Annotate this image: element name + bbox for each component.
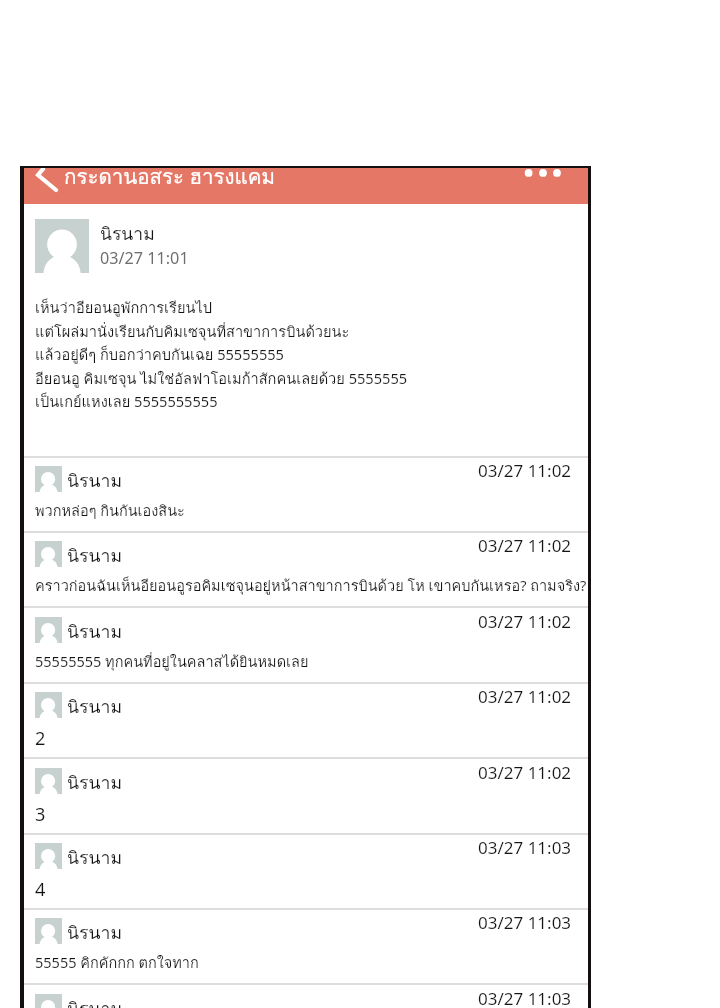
staticText: 2 [35,726,46,751]
staticText: 03/27 11:01 [100,247,189,269]
staticText: นิรนาม [100,220,155,248]
staticText: แต่โผล่มานั่งเรียนกับคิมเซจุนที่สาขาการบ… [35,320,350,343]
button[interactable]: Back [32,168,64,200]
staticText: นิรนาม [67,618,122,646]
staticText: นิรนาม [67,995,122,1008]
staticText: 03/27 11:02 [478,459,572,482]
staticText: นิรนาม [67,693,122,721]
staticText: 55555 คิกคักกก ตกใจทาก [35,951,199,974]
button[interactable]: นิรนาม [24,760,588,835]
staticText: 4 [35,877,46,902]
staticText: 03/27 11:03 [478,987,572,1008]
staticText: 3 [35,802,46,827]
staticText: เห็นว่าอียอนอูพักการเรียนไป [35,296,213,319]
staticText: นิรนาม [67,769,122,797]
button[interactable]: นิรนาม [24,684,588,759]
staticText: พวกหล่อๆ กินกันเองสินะ [35,499,185,522]
button[interactable]: นิรนาม [24,609,588,684]
staticText: นิรนาม [67,467,122,495]
staticText: 03/27 11:02 [478,685,572,708]
staticText: แล้วอยู่ดีๆ ก็บอกว่าคบกันเฉย 55555555 [35,343,284,366]
staticText: นิรนาม [67,542,122,570]
staticText: คราวก่อนฉันเห็นอียอนอูรอคิมเซจุนอยู่หน้า… [35,574,587,597]
button[interactable]: นิรนาม [24,458,588,533]
button[interactable]: นิรนาม [24,533,588,608]
button[interactable]: More options [521,168,565,184]
button[interactable]: นิรนาม [24,986,588,1008]
staticText: นิรนาม [67,844,122,872]
staticText: กระดานอสระ ฮารงแคม [64,168,275,193]
staticText: 03/27 11:02 [478,610,572,633]
staticText: นิรนาม [67,919,122,947]
staticText: เป็นเกย์แหงเลย 5555555555 [35,390,218,413]
staticText: อียอนอู คิมเซจุน ไม่ใช่อัลฟาโอเมก้าสักคน… [35,367,408,390]
button[interactable]: นิรนาม [24,910,588,985]
staticText: 03/27 11:02 [478,761,572,784]
staticText: 03/27 11:03 [478,836,572,859]
staticText: 03/27 11:02 [478,534,572,557]
staticText: 55555555 ทุกคนที่อยู่ในคลาสได้ยินหมดเลย [35,650,309,673]
staticText: 03/27 11:03 [478,911,572,934]
button[interactable]: นิรนาม [24,835,588,910]
